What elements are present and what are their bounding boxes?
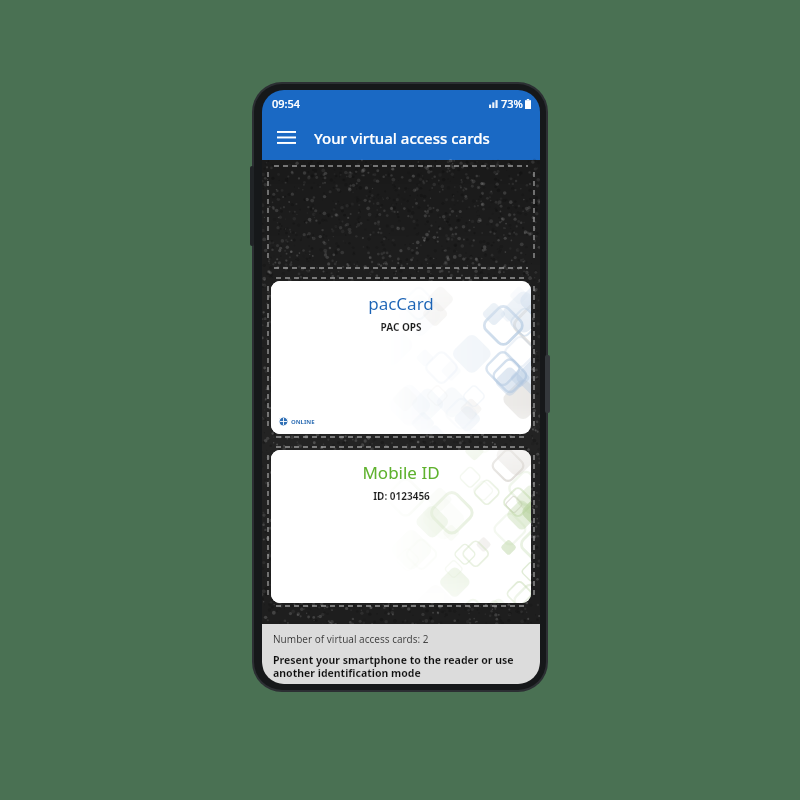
button[interactable]: Open navigation menu [268, 120, 304, 156]
button[interactable]: pacCard [271, 281, 531, 434]
staticText: 09:54 [272, 96, 301, 111]
button[interactable]: Number of virtual access cards: 2 [262, 624, 540, 684]
staticText: Your virtual access cards [314, 128, 490, 148]
staticText: Number of virtual access cards: 2 [273, 632, 429, 646]
staticText: 73% [501, 96, 523, 111]
staticText: ID: 0123456 [373, 489, 430, 503]
staticText: ONLINE [291, 418, 315, 426]
staticText: Mobile ID [362, 461, 440, 484]
staticText: PAC OPS [380, 320, 422, 334]
button[interactable]: Mobile ID [271, 450, 531, 603]
staticText: Present your smartphone to the reader or… [273, 653, 529, 680]
staticText: pacCard [368, 292, 434, 315]
